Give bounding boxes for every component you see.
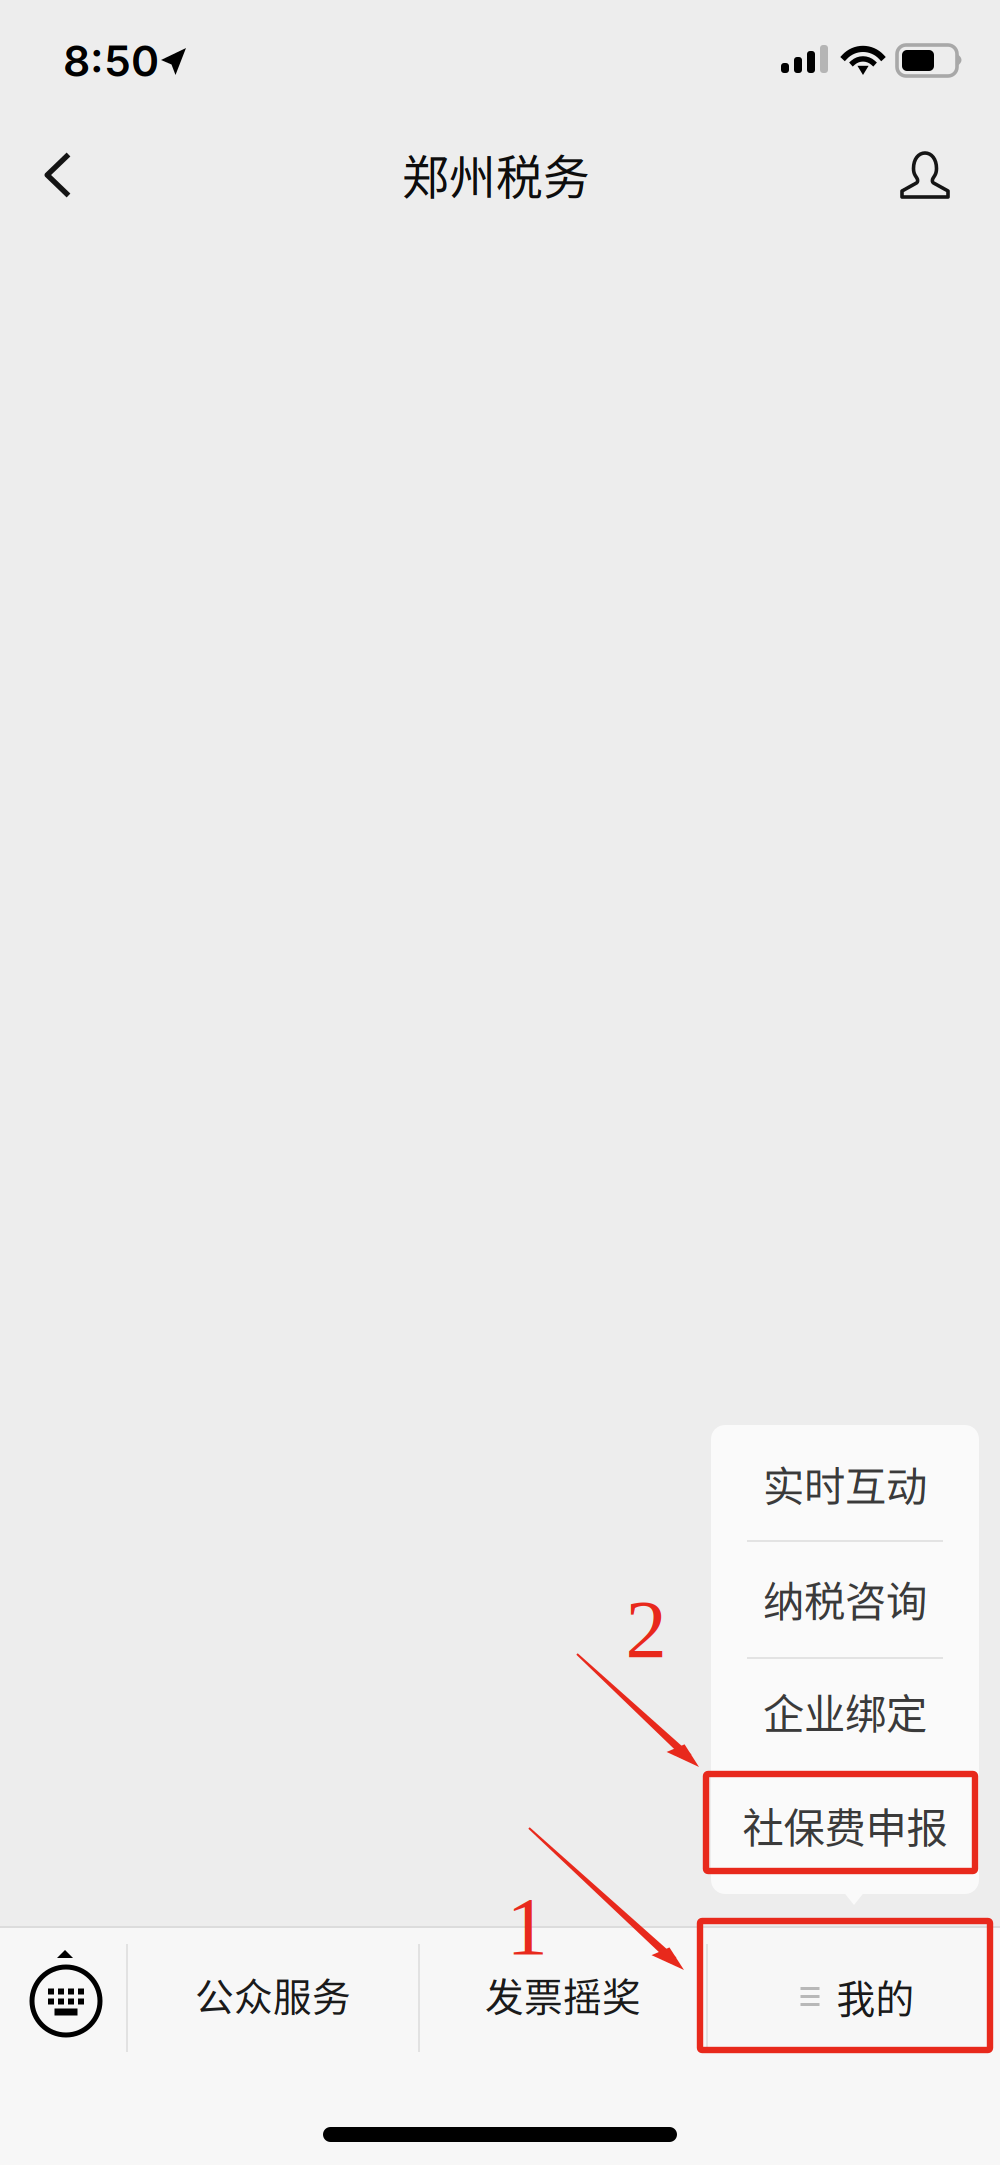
- button[interactable]: 发票摇奖: [419, 1932, 707, 2057]
- staticText: 公众服务: [195, 1966, 351, 2022]
- button[interactable]: Keyboard: [0, 1928, 127, 2053]
- staticText: 郑州税务: [402, 140, 590, 208]
- button[interactable]: Back: [8, 125, 108, 225]
- button[interactable]: Profile: [875, 125, 975, 225]
- staticText: 2: [625, 1583, 666, 1675]
- staticText: 我的: [836, 1968, 914, 2024]
- button[interactable]: 公众服务: [127, 1932, 419, 2057]
- staticText: 发票摇奖: [485, 1966, 641, 2022]
- button[interactable]: 企业绑定: [711, 1654, 979, 1768]
- button[interactable]: 实时互动: [711, 1426, 979, 1541]
- staticText: 纳税咨询: [763, 1569, 927, 1628]
- staticText: 企业绑定: [763, 1681, 927, 1741]
- button[interactable]: 我的: [711, 1934, 1000, 2059]
- staticText: 社保费申报: [742, 1795, 947, 1855]
- button[interactable]: 纳税咨询: [711, 1541, 979, 1656]
- staticText: 1: [506, 1880, 547, 1972]
- staticText: 8:50: [63, 35, 159, 87]
- button[interactable]: 社保费申报: [711, 1768, 979, 1882]
- staticText: 实时互动: [763, 1454, 927, 1513]
